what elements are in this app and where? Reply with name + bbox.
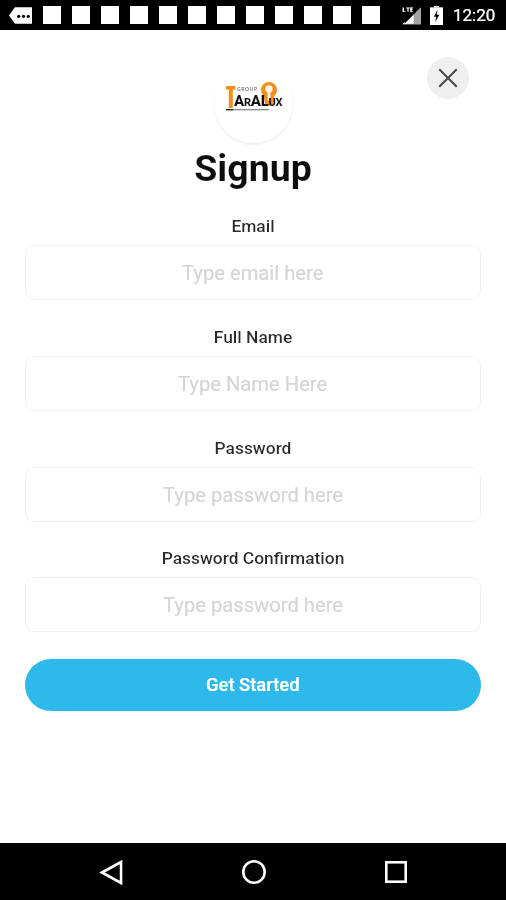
staticText: Type Name Here xyxy=(178,372,328,396)
button[interactable]: Get Started xyxy=(25,659,481,711)
staticText: Full Name xyxy=(0,327,506,347)
staticText: Type password here xyxy=(163,483,344,507)
button[interactable]: Close xyxy=(427,57,469,99)
staticText: ARALUX xyxy=(234,92,283,110)
button[interactable]: Back xyxy=(85,846,137,898)
button[interactable]: Type password here xyxy=(25,467,481,522)
staticText: Email xyxy=(0,216,506,236)
staticText: 12:20 xyxy=(453,5,496,25)
staticText: Password xyxy=(0,438,506,458)
staticText: Type email here xyxy=(182,261,324,285)
button[interactable]: Type password here xyxy=(25,577,481,632)
button[interactable]: Home xyxy=(228,846,280,898)
staticText: GROUP xyxy=(237,85,258,92)
staticText: Signup xyxy=(0,146,506,190)
button[interactable]: Type Name Here xyxy=(25,356,481,411)
staticText: Password Confirmation xyxy=(0,548,506,568)
staticText: Type password here xyxy=(163,593,344,617)
button[interactable]: Type email here xyxy=(25,245,481,300)
button[interactable]: Recents xyxy=(370,846,422,898)
staticText: Get Started xyxy=(206,674,300,696)
